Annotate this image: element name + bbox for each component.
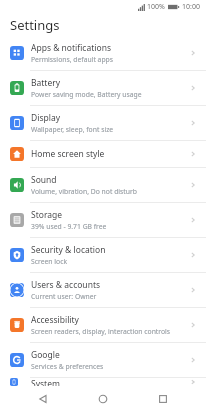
staticText: Google — [31, 349, 60, 361]
staticText: Users & accounts — [31, 279, 101, 291]
button[interactable]: Accessibility — [0, 308, 206, 342]
button[interactable]: Users & accounts — [0, 273, 206, 307]
staticText: 10:00 — [182, 2, 200, 12]
button[interactable]: Home screen style — [0, 141, 206, 167]
staticText: Security & location — [31, 244, 106, 256]
staticText: Settings — [10, 16, 60, 34]
staticText: Current user: Owner — [31, 292, 97, 301]
staticText: Apps & notifications — [31, 42, 111, 54]
button[interactable]: Storage — [0, 203, 206, 237]
button[interactable]: Home — [86, 386, 120, 412]
button[interactable]: Recent apps — [146, 386, 180, 412]
staticText: Screen lock — [31, 257, 68, 266]
button[interactable]: System — [0, 378, 206, 386]
staticText: Permissions, default apps — [31, 55, 114, 64]
staticText: Display — [31, 112, 60, 124]
button[interactable]: Display — [0, 106, 206, 140]
staticText: Services & preferences — [31, 362, 104, 371]
staticText: Battery — [31, 77, 61, 89]
button[interactable]: Security & location — [0, 238, 206, 272]
staticText: 39% used - 9.71 GB free — [31, 222, 107, 231]
staticText: Sound — [31, 174, 57, 186]
button[interactable]: Battery — [0, 71, 206, 105]
button[interactable]: Back — [26, 386, 60, 412]
staticText: 100% — [147, 2, 165, 12]
button[interactable]: Google — [0, 343, 206, 377]
staticText: Wallpaper, sleep, font size — [31, 125, 114, 134]
staticText: System — [31, 378, 60, 386]
staticText: Volume, vibration, Do not disturb — [31, 187, 137, 196]
staticText: Accessibility — [31, 314, 79, 326]
staticText: Storage — [31, 209, 63, 221]
button[interactable]: Sound — [0, 168, 206, 202]
staticText: Screen readers, display, interaction con… — [31, 327, 171, 336]
staticText: Home screen style — [31, 148, 105, 160]
staticText: Power saving mode, Battery usage — [31, 90, 142, 99]
button[interactable]: Apps & notifications — [0, 36, 206, 70]
